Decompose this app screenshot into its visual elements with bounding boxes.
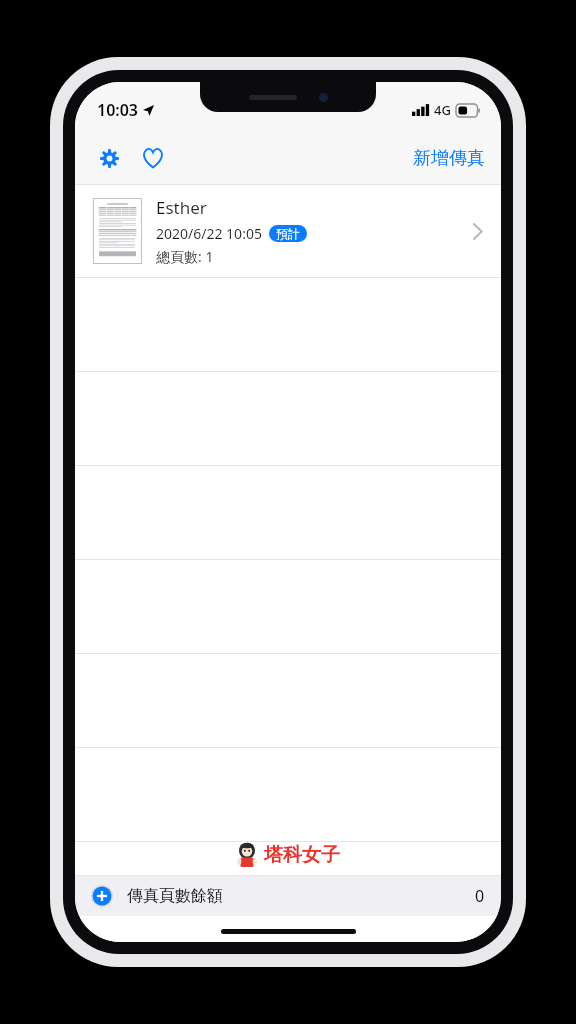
button[interactable]: 傳真頁數餘額 <box>75 876 501 916</box>
button[interactable]: Favorites <box>131 136 175 180</box>
staticText: 傳真頁數餘額 <box>127 886 475 906</box>
staticText: 10:03 <box>97 99 139 121</box>
staticText: 塔科女子 <box>264 843 340 867</box>
staticText: 總頁數: 1 <box>156 247 214 266</box>
staticText: 預計 <box>276 226 300 241</box>
button[interactable]: 新增傳真 <box>397 137 501 180</box>
staticText: Esther <box>156 196 207 219</box>
staticText: 0 <box>475 885 485 907</box>
staticText: 2020/6/22 10:05 <box>156 224 262 243</box>
button[interactable]: Esther <box>75 185 501 277</box>
button[interactable]: Settings <box>87 136 131 180</box>
staticText: 4G <box>434 101 451 119</box>
staticText: 新增傳真 <box>413 147 485 170</box>
